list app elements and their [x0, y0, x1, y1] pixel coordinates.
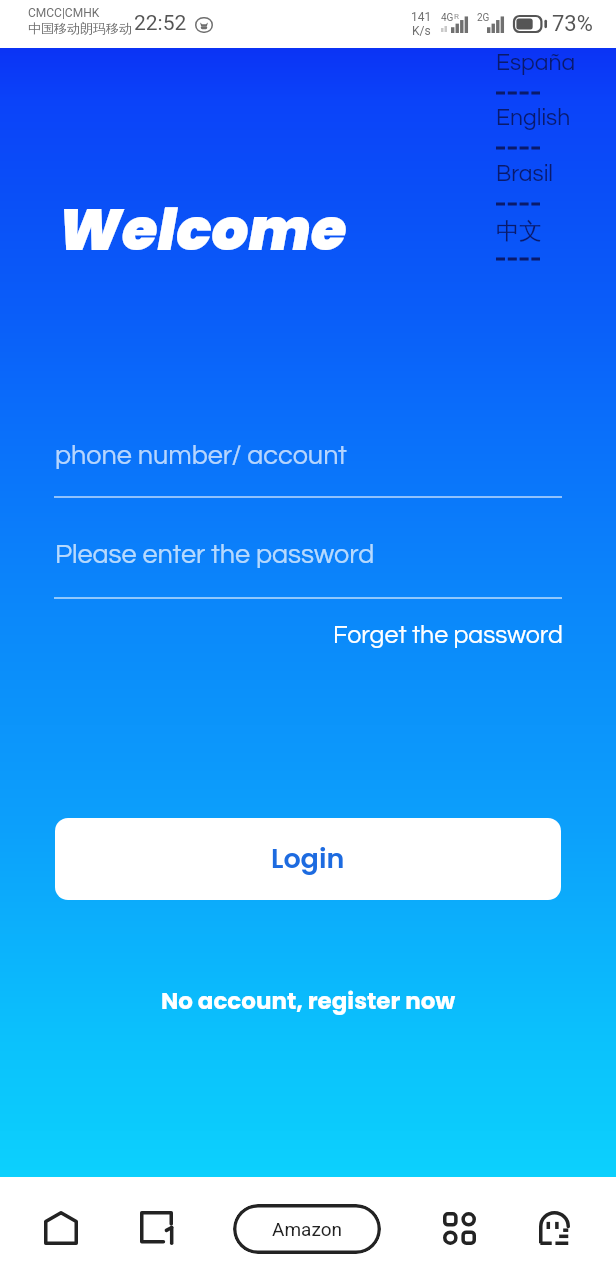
staticText: K/s	[412, 24, 431, 38]
staticText: phone number/ account	[55, 442, 347, 470]
staticText: 中国移动朗玛移动	[28, 20, 132, 36]
staticText: English	[496, 106, 571, 130]
staticText: CMCC|CMHK	[28, 6, 100, 20]
staticText: 中文	[496, 217, 542, 246]
button[interactable]: English	[490, 101, 616, 156]
button[interactable]: Home	[22, 1189, 99, 1266]
button[interactable]: Brasil	[490, 157, 616, 212]
staticText: 141	[411, 10, 432, 24]
button[interactable]: España	[490, 46, 616, 101]
staticText: 73%	[552, 11, 593, 37]
staticText: Welcome	[58, 189, 347, 270]
button[interactable]: Tabs, 1 open	[117, 1189, 195, 1267]
staticText: R	[454, 12, 459, 21]
button[interactable]: Amazon	[233, 1204, 381, 1254]
button[interactable]: Apps	[420, 1189, 498, 1267]
staticText: Forget the password	[333, 622, 563, 648]
staticText: 22:52	[134, 11, 187, 36]
button[interactable]: No account, register now	[155, 979, 462, 1023]
button[interactable]: Forget the password	[325, 617, 570, 653]
staticText: 4G	[441, 12, 454, 24]
staticText: España	[496, 51, 576, 75]
button[interactable]: 中文	[490, 212, 616, 267]
button[interactable]: Login	[55, 818, 561, 900]
staticText: Brasil	[496, 162, 554, 186]
staticText: Amazon	[272, 1218, 342, 1240]
staticText: 2G	[477, 12, 490, 24]
staticText: Please enter the password	[55, 541, 375, 569]
button[interactable]: Profile	[516, 1189, 593, 1266]
staticText: Login	[271, 840, 345, 878]
